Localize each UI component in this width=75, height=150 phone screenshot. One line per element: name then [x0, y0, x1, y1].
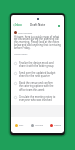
staticText: Alex Morgan	[18, 31, 33, 34]
staticText: Delete	[54, 124, 61, 127]
button[interactable]: Circulate the meeting notes to everyone …	[11, 95, 64, 105]
button[interactable]: Archive	[28, 123, 46, 128]
button[interactable]: Delete	[46, 123, 64, 128]
button[interactable]: Finalize the design mock and share it wi…	[11, 61, 64, 71]
staticText: Send over the updated budget sheet for t…	[19, 71, 56, 77]
staticText: Archive	[35, 124, 43, 127]
staticText: Draft Note	[30, 23, 46, 27]
staticText: Hi team, here is a quick recap of what w…	[14, 35, 61, 50]
button[interactable]: Send over the updated budget sheet for t…	[11, 71, 64, 81]
staticText: Inbox	[15, 23, 22, 27]
button[interactable]: Inbox	[12, 22, 23, 28]
button[interactable]: Star	[11, 123, 28, 128]
button[interactable]: Book the venue and confirm the catering …	[11, 81, 64, 95]
staticText: Finalize the design mock and share it wi…	[19, 61, 56, 67]
staticText: Book the venue and confirm the catering …	[19, 81, 56, 91]
button[interactable]: Saved	[56, 23, 61, 28]
staticText: Circulate the meeting notes to everyone …	[19, 95, 56, 101]
staticText: Star	[19, 124, 24, 127]
staticText: Action items	[14, 53, 28, 56]
